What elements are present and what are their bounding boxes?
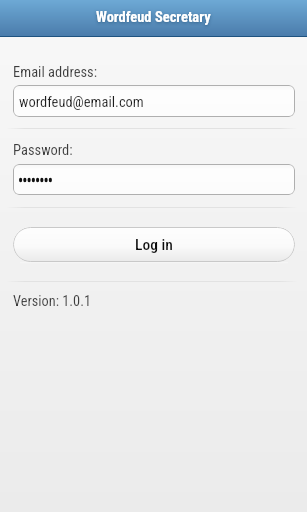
button[interactable]: Log in bbox=[13, 227, 295, 262]
button[interactable]: Password bbox=[13, 164, 295, 195]
staticText: Password: bbox=[13, 142, 73, 159]
staticText: wordfeud@email.com bbox=[19, 94, 144, 111]
staticText: Version: 1.0.1 bbox=[13, 293, 91, 310]
button[interactable]: wordfeud@email.com bbox=[13, 85, 295, 117]
staticText: Email address: bbox=[13, 64, 98, 81]
staticText: Wordfeud Secretary bbox=[96, 9, 211, 26]
staticText: Log in bbox=[135, 236, 173, 254]
